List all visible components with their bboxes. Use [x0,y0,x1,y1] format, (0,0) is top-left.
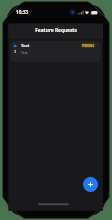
staticText: 1 [14,49,17,54]
staticText: 16:33 [16,9,29,16]
button[interactable] [11,43,19,60]
staticText: Test [21,43,30,48]
staticText: PENDING [82,44,95,48]
staticText: Test [21,50,28,55]
button[interactable] [83,177,98,192]
staticText: Feature Requests [0,27,112,34]
button[interactable]: 1 [10,41,101,62]
